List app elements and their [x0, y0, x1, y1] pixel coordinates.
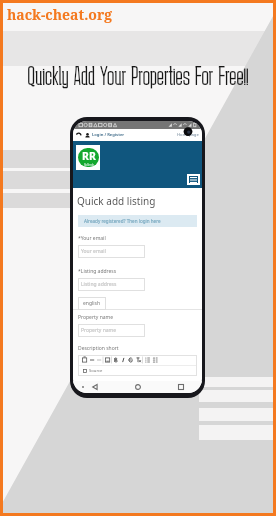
staticText: *Your email — [78, 235, 106, 242]
staticText: Description short — [78, 345, 119, 352]
staticText: RR — [82, 149, 96, 163]
button[interactable]: Homepage — [177, 132, 199, 138]
button[interactable]: Property name — [78, 324, 145, 337]
button[interactable]: Open navigation menu — [187, 174, 200, 185]
button[interactable]: Login / Register — [76, 132, 125, 138]
staticText: Property name — [81, 327, 117, 334]
staticText: english — [83, 300, 101, 307]
staticText: Quick add listing — [77, 194, 156, 208]
staticText: Property name — [78, 314, 114, 321]
button[interactable]: Your email — [78, 245, 145, 258]
button[interactable] — [78, 355, 197, 365]
staticText: Source — [89, 368, 103, 374]
staticText: hack-cheat.org — [7, 5, 113, 24]
button[interactable]: Source — [83, 368, 103, 374]
button[interactable]: Recent apps — [159, 381, 202, 393]
staticText: Listing address — [81, 281, 117, 288]
staticText: Quickly Add Your Properties For Free!! — [0, 62, 276, 89]
staticText: Login / Register — [92, 132, 125, 138]
button[interactable]: english — [78, 297, 106, 310]
staticText: *Listing address — [78, 268, 117, 275]
staticText: Already registered? Then login here — [84, 218, 161, 224]
staticText: Rollerdo — [84, 163, 95, 167]
staticText: Your email — [81, 248, 106, 255]
button[interactable]: Already registered? Then login here — [78, 215, 197, 227]
button[interactable]: Listing address — [78, 278, 145, 291]
button[interactable]: RR — [76, 145, 100, 170]
button[interactable]: Home — [116, 381, 159, 393]
button[interactable]: Back — [73, 381, 116, 393]
